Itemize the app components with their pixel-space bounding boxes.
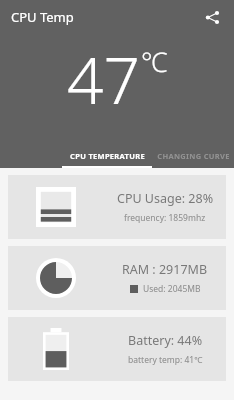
staticText: CPU Usage: 28%: [117, 190, 214, 207]
staticText: RAM : 2917MB: [122, 261, 208, 278]
button[interactable]: Share: [198, 3, 226, 31]
button[interactable]: CPU TEMPERATURE: [62, 144, 152, 168]
staticText: CPU TEMPERATURE: [70, 151, 145, 161]
staticText: Used: 2045MB: [143, 283, 201, 295]
staticText: frequency: 1859mhz: [124, 212, 206, 224]
button[interactable]: CHANGING CURVE: [152, 144, 234, 168]
staticText: CHANGING CURVE: [157, 151, 230, 161]
button[interactable]: RAM : 2917MB: [8, 246, 226, 310]
staticText: battery temp: 41℃: [128, 354, 203, 366]
staticText: Battery: 44%: [128, 332, 203, 349]
staticText: CPU Temp: [11, 8, 74, 26]
staticText: 47: [67, 36, 141, 123]
staticText: ℃: [141, 43, 168, 80]
button[interactable]: Battery: 44%: [8, 317, 226, 381]
button[interactable]: CPU Usage: 28%: [8, 175, 226, 239]
